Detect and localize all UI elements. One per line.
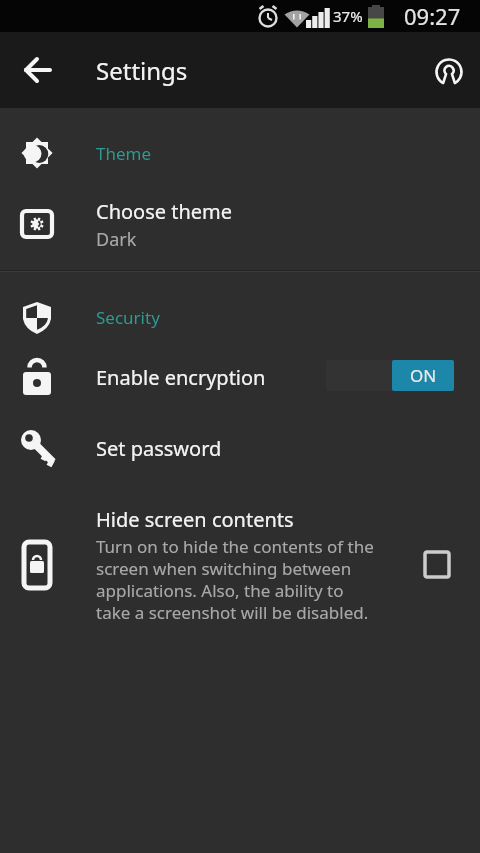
staticText: Turn on to hide the contents of the scre… [96, 535, 374, 624]
staticText: Security [96, 306, 160, 329]
staticText: ON [410, 364, 437, 387]
staticText: Enable encryption [96, 364, 266, 391]
button[interactable] [0, 184, 480, 266]
staticText: Theme [96, 142, 152, 165]
button[interactable] [0, 32, 56, 108]
button[interactable]: ON [392, 360, 454, 391]
staticText: Hide screen contents [96, 506, 294, 533]
button[interactable] [421, 44, 475, 98]
button[interactable] [0, 292, 480, 342]
button[interactable] [0, 418, 480, 476]
button[interactable] [0, 130, 480, 176]
staticText: Dark [96, 227, 137, 252]
staticText: Settings [96, 54, 188, 87]
button[interactable] [0, 500, 480, 630]
staticText: Choose theme [96, 198, 233, 225]
staticText: 37% [333, 6, 363, 26]
staticText: Set password [96, 435, 222, 462]
staticText: 09:27 [404, 1, 461, 31]
button[interactable] [0, 348, 480, 406]
